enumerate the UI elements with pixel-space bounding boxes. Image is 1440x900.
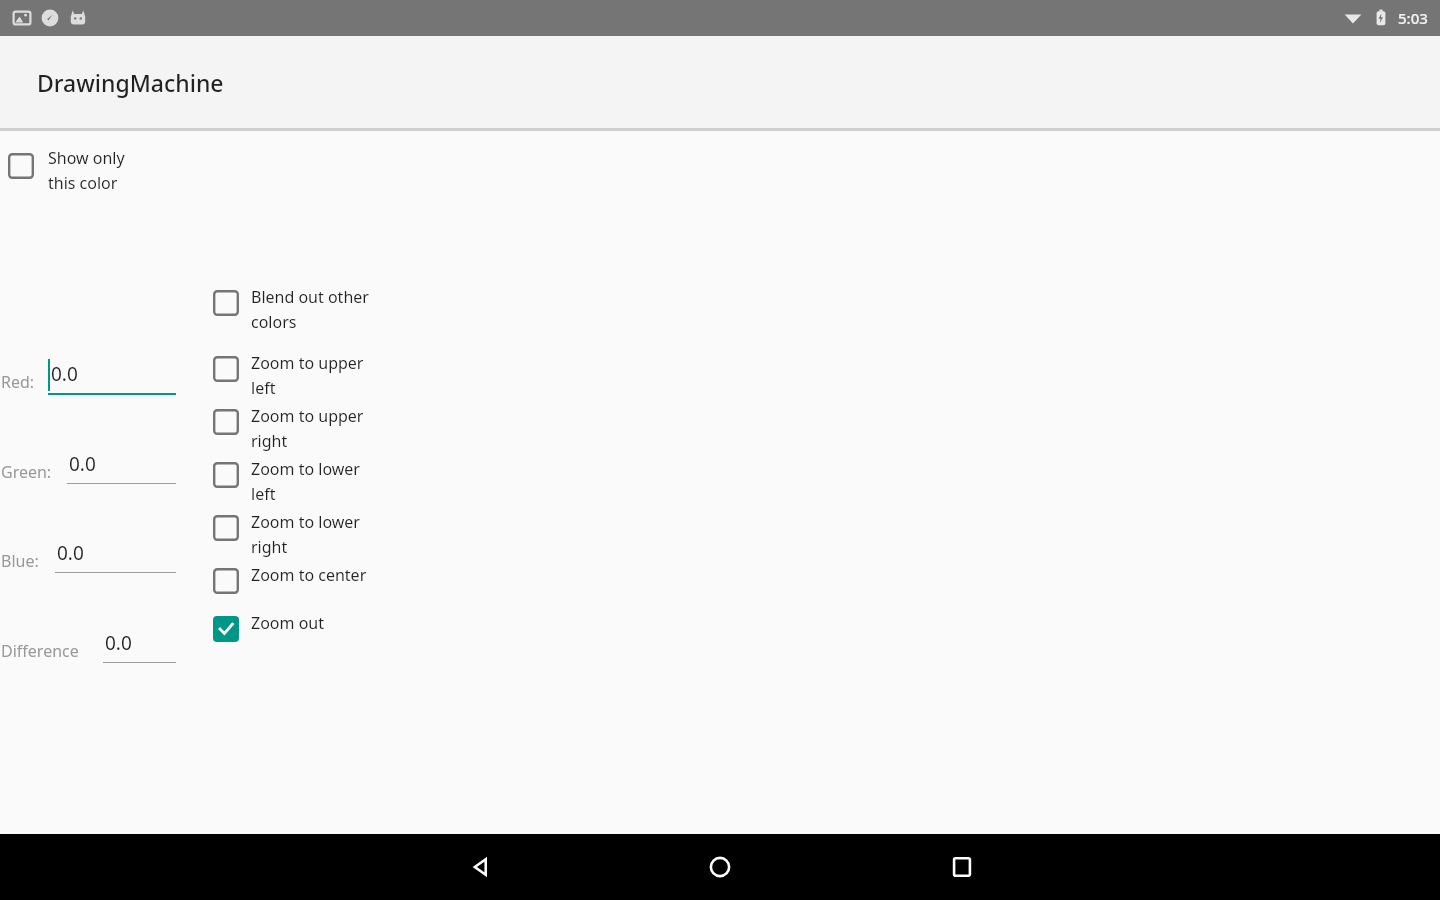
staticText: Zoom to upper right — [251, 405, 364, 451]
button[interactable]: 0.0 — [67, 447, 176, 473]
staticText: Show only this color — [48, 147, 125, 193]
button[interactable]: Zoom to lower right — [213, 511, 413, 557]
staticText: 0.0 — [105, 630, 132, 656]
button[interactable]: Blend out other colors — [213, 286, 413, 332]
staticText: Blend out other colors — [251, 286, 369, 332]
button[interactable]: Zoom to upper right — [213, 405, 413, 451]
staticText: Zoom to center — [251, 564, 367, 586]
button[interactable]: Zoom out — [213, 612, 413, 638]
staticText: Difference — [1, 640, 79, 662]
staticText: Blue: — [1, 550, 39, 572]
button[interactable]: 0.0 — [55, 536, 176, 562]
staticText: 5:03 — [1398, 8, 1428, 28]
button[interactable]: Zoom to upper left — [213, 352, 413, 398]
button[interactable]: Zoom to lower left — [213, 458, 413, 504]
staticText: Zoom to lower left — [251, 458, 360, 504]
button[interactable]: Recent apps — [938, 843, 986, 891]
button[interactable]: Zoom to center — [213, 564, 413, 590]
button[interactable]: Home — [696, 843, 744, 891]
staticText: 0.0 — [57, 540, 84, 566]
staticText: Zoom to lower right — [251, 511, 360, 557]
button[interactable]: 0.0 — [48, 357, 176, 389]
staticText: Zoom to upper left — [251, 352, 364, 398]
button[interactable]: Show only this color — [8, 147, 198, 193]
staticText: 0.0 — [51, 361, 78, 387]
staticText: 0.0 — [69, 451, 96, 477]
staticText: DrawingMachine — [37, 67, 224, 98]
staticText: Green: — [1, 461, 52, 483]
button[interactable]: 0.0 — [103, 626, 176, 652]
button[interactable]: Back — [456, 843, 504, 891]
staticText: Red: — [1, 371, 35, 393]
staticText: Zoom out — [251, 612, 324, 634]
